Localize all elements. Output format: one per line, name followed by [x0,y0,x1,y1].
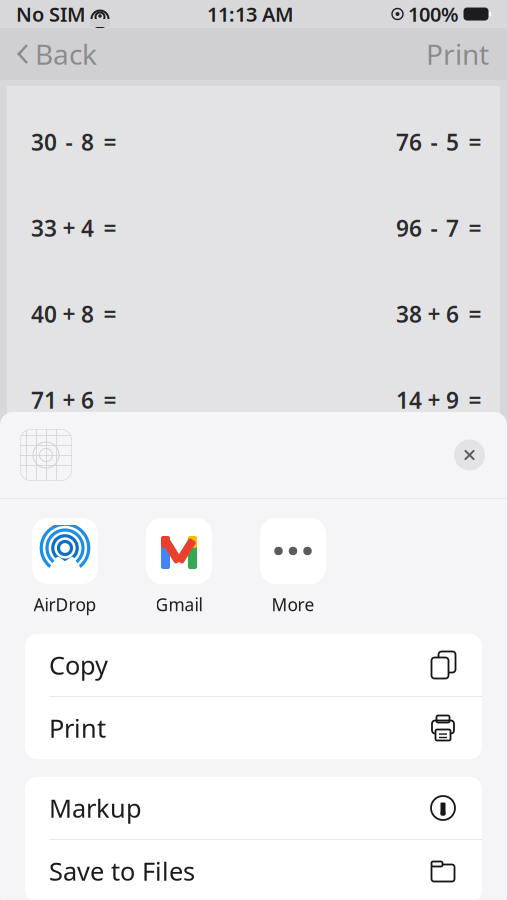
staticText: 8 [81,127,94,157]
staticText: Print [49,711,106,745]
staticText: 4 [81,213,94,243]
button[interactable]: Close [454,439,485,470]
staticText: No SIM [16,1,86,27]
button[interactable]: Markup [25,777,482,839]
staticText: 6 [446,299,459,329]
staticText: Copy [49,648,108,682]
button[interactable]: Gmail [131,518,227,616]
button[interactable]: Copy [25,634,482,696]
staticText: 33 [31,213,57,243]
staticText: 8 [81,299,94,329]
staticText: = [468,385,481,415]
staticText: 14 [396,385,422,415]
staticText: 9 [446,385,459,415]
staticText: Markup [49,791,142,825]
staticText: = [103,385,116,415]
button[interactable]: Print [426,29,507,79]
staticText: 6 [81,385,94,415]
staticText: 76 [396,127,422,157]
staticText: 100% [408,1,459,27]
button[interactable]: AirDrop [17,518,113,616]
button[interactable]: More [245,518,341,616]
staticText: Save to Files [49,854,195,888]
staticText: 7 [446,213,459,243]
staticText: 30 [31,127,57,157]
staticText: More [271,593,314,616]
staticText: 96 [396,213,422,243]
staticText: + [62,299,75,329]
button[interactable]: Print [25,697,482,759]
staticText: Back [35,35,97,73]
staticText: 38 [396,299,422,329]
staticText: - [430,127,437,157]
button[interactable]: Save to Files [25,840,482,900]
staticText: + [427,299,440,329]
staticText: 5 [446,127,459,157]
staticText: AirDrop [33,593,96,616]
staticText: = [103,299,116,329]
staticText: 71 [31,385,57,415]
staticText: = [103,213,116,243]
staticText: = [468,299,481,329]
staticText: + [62,213,75,243]
staticText: Gmail [155,593,202,616]
button[interactable]: Back [0,29,97,79]
staticText: = [103,127,116,157]
staticText: + [62,385,75,415]
staticText: 11:13 AM [207,1,294,27]
staticText: + [427,385,440,415]
staticText: = [468,213,481,243]
staticText: - [65,127,72,157]
staticText: = [468,127,481,157]
staticText: Print [426,35,489,73]
staticText: - [430,213,437,243]
staticText: 40 [31,299,57,329]
